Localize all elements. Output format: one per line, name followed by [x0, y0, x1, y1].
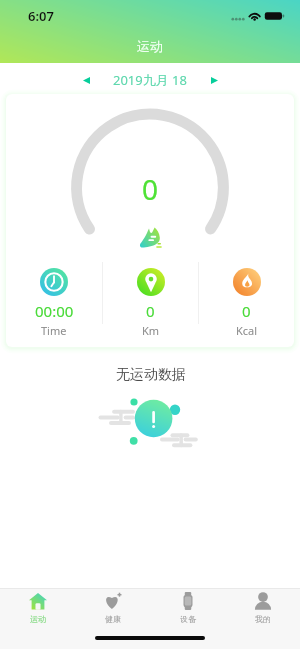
button[interactable]: Next day	[202, 68, 226, 92]
button[interactable]: 健康	[75, 592, 150, 624]
button[interactable]: 运动	[0, 592, 75, 624]
staticText: 0	[142, 170, 159, 208]
staticText: 0	[242, 301, 251, 321]
button[interactable]: 我的	[225, 592, 300, 624]
staticText: 我的	[255, 614, 271, 624]
button[interactable]: 0	[199, 268, 294, 338]
staticText: 健康	[105, 614, 121, 624]
button[interactable]: 0	[103, 268, 198, 338]
staticText: Km	[142, 323, 160, 338]
staticText: 运动	[137, 38, 163, 54]
button[interactable]: 00:00	[6, 268, 102, 338]
staticText: 2019九月 18	[113, 71, 187, 89]
button[interactable]: 设备	[150, 592, 225, 624]
staticText: Time	[41, 323, 67, 338]
staticText: 0	[146, 301, 155, 321]
staticText: 设备	[180, 614, 196, 624]
staticText: 6:07	[28, 7, 54, 25]
staticText: 运动	[30, 614, 46, 624]
staticText: Kcal	[236, 323, 258, 338]
staticText: 无运动数据	[116, 366, 186, 384]
button[interactable]: Previous day	[74, 68, 98, 92]
staticText: 00:00	[35, 301, 74, 321]
